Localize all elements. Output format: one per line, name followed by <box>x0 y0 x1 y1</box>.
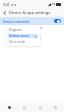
button[interactable]: Home <box>3 103 15 112</box>
staticText: Ringtone <box>9 28 22 32</box>
button[interactable]: Back <box>0 8 9 17</box>
button[interactable]: Device controls <box>0 17 64 25</box>
button[interactable]: Silent mode <box>8 40 38 44</box>
staticText: Silent mode <box>9 40 37 44</box>
button[interactable]: Devices <box>18 103 30 112</box>
staticText: Default sound <box>9 34 34 38</box>
button[interactable]: Default sound <box>8 34 38 38</box>
staticText: Device controls <box>3 19 54 24</box>
staticText: 9:41 <box>3 2 10 7</box>
button[interactable]: Toggle device controls <box>54 19 61 23</box>
staticText: Device & app settings <box>9 10 61 15</box>
button[interactable]: Settings <box>49 103 61 112</box>
button[interactable]: Routines <box>34 103 46 112</box>
